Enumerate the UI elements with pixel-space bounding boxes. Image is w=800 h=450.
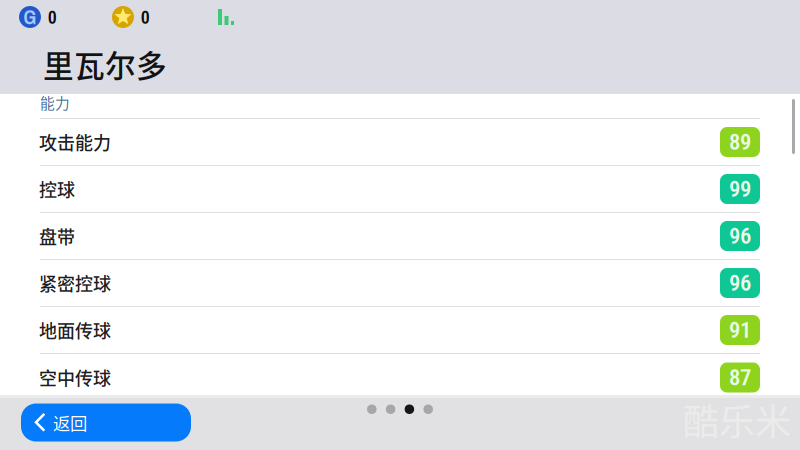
staticText: 盘带 [39,223,75,249]
button[interactable]: Statistics [210,0,242,34]
staticText: 91 [729,317,751,343]
staticText: 紧密控球 [39,270,111,296]
button[interactable]: 地面传球 [0,307,800,354]
staticText: 控球 [39,176,75,202]
button[interactable]: 0 [104,0,158,34]
staticText: 里瓦尔多 [43,42,167,86]
staticText: 0 [141,4,150,29]
staticText: 89 [729,129,751,155]
button[interactable]: G [0,0,65,34]
staticText: 96 [729,270,751,296]
staticText: 96 [729,223,751,249]
button[interactable]: Page 4 [423,404,433,414]
button[interactable]: 返回 [21,403,191,441]
button[interactable]: Page 3, current page [405,404,414,414]
button[interactable]: 紧密控球 [0,260,800,307]
button[interactable]: Page 2 [386,404,395,414]
staticText: 返回 [53,410,87,435]
button[interactable]: 盘带 [0,213,800,260]
staticText: 99 [729,176,751,202]
button[interactable]: 控球 [0,166,800,213]
staticText: 0 [48,4,57,29]
button[interactable]: 攻击能力 [0,119,800,166]
staticText: 酷乐米 [683,393,791,445]
staticText: 空中传球 [39,364,111,391]
staticText: 87 [729,364,751,391]
staticText: 地面传球 [39,317,111,343]
staticText: 攻击能力 [39,129,111,155]
staticText: 能力 [40,92,70,113]
staticText: G [23,3,36,30]
button[interactable]: Page 1 [367,404,377,414]
button[interactable]: 空中传球 [0,354,800,401]
